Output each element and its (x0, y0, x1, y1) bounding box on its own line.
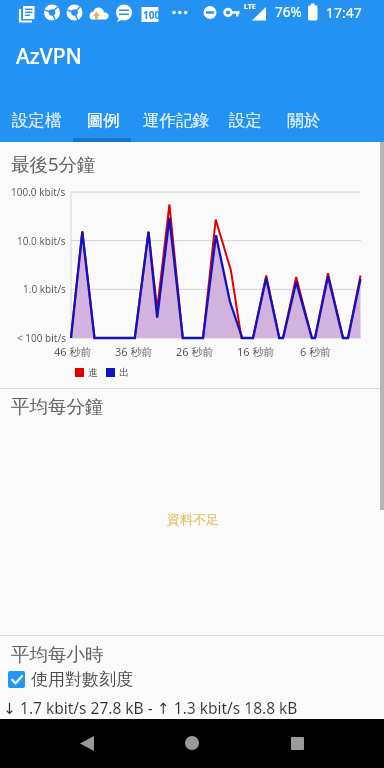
staticText: LTE (244, 2, 256, 12)
staticText: 10.0 kbit/s (17, 234, 66, 248)
staticText: 設定 (229, 110, 262, 131)
staticText: 17:47 (326, 3, 362, 22)
staticText: 運作記錄 (143, 110, 209, 131)
staticText: 6 秒前 (300, 344, 332, 359)
staticText: ↓ 1.7 kbit/s 27.8 kB - ↑ 1.3 kbit/s 18.8… (3, 697, 298, 718)
staticText: 圖例 (87, 110, 120, 131)
staticText: 16 秒前 (237, 344, 275, 359)
button[interactable]: 關於 (277, 98, 330, 142)
staticText: 出 (119, 366, 129, 379)
button[interactable]: 設定檔 (1, 98, 72, 142)
staticText: 26 秒前 (176, 344, 214, 359)
staticText: 設定檔 (12, 110, 62, 131)
staticText: 76% (275, 3, 302, 21)
staticText: 平均每分鐘 (11, 395, 104, 418)
staticText: 100 (143, 8, 161, 22)
button[interactable]: 設定 (219, 98, 272, 142)
button[interactable]: 圖例 (74, 98, 133, 142)
button[interactable]: Back (63, 719, 111, 767)
staticText: AzVPN (16, 42, 82, 71)
staticText: 36 秒前 (115, 344, 153, 359)
button[interactable]: Recent apps (273, 719, 321, 767)
staticText: 最後5分鐘 (11, 151, 96, 176)
staticText: 關於 (287, 110, 320, 131)
staticText: 進 (88, 366, 98, 379)
staticText: < 100 bit/s (17, 331, 66, 345)
staticText: 資料不足 (167, 511, 219, 527)
button[interactable]: 使用對數刻度 (0, 666, 384, 692)
staticText: 平均每小時 (11, 643, 104, 666)
staticText: 100.0 kbit/s (11, 185, 66, 199)
staticText: 46 秒前 (54, 344, 92, 359)
button[interactable]: Home (168, 719, 216, 767)
button[interactable]: 運作記錄 (130, 98, 221, 142)
staticText: 1.0 kbit/s (23, 282, 66, 296)
staticText: 使用對數刻度 (31, 669, 133, 690)
